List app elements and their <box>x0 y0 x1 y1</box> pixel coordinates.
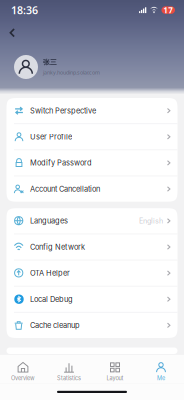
button[interactable]: Account Cancellation <box>6 176 177 202</box>
button[interactable]: Config Network <box>6 234 177 260</box>
staticText: OTA Helper <box>30 269 70 278</box>
staticText: Modify Password <box>30 158 92 167</box>
staticText: Local Debug <box>30 295 73 304</box>
staticText: Config Network <box>30 242 85 251</box>
button[interactable]: Cache cleanup <box>6 313 177 338</box>
staticText: 18:36 <box>11 3 38 17</box>
staticText: 张三 <box>43 58 57 66</box>
staticText: Overview <box>11 375 35 382</box>
button[interactable]: 张三 <box>0 55 184 79</box>
staticText: Layout <box>106 375 123 382</box>
staticText: User Profile <box>30 132 72 141</box>
staticText: Statistics <box>57 375 81 382</box>
button[interactable]: Me <box>138 353 184 385</box>
button[interactable]: Back <box>0 25 24 40</box>
staticText: Switch Perspective <box>30 106 96 115</box>
button[interactable]: User Profile <box>6 124 177 150</box>
staticText: English <box>139 216 163 225</box>
button[interactable]: Modify Password <box>6 150 177 176</box>
button[interactable]: Languages <box>6 208 177 234</box>
staticText: Cache cleanup <box>30 321 80 330</box>
button[interactable]: Statistics <box>46 353 92 385</box>
button[interactable]: OTA Helper <box>6 260 177 286</box>
staticText: Account Cancellation <box>30 184 100 193</box>
button[interactable]: Overview <box>0 353 46 385</box>
staticText: janky.houdinp.solar.com <box>43 69 100 76</box>
staticText: Languages <box>30 216 68 225</box>
button[interactable]: Switch Perspective <box>6 98 177 124</box>
staticText: 17 <box>163 5 173 15</box>
staticText: Me <box>157 375 165 382</box>
button[interactable]: Layout <box>92 353 138 385</box>
button[interactable]: Local Debug <box>6 286 177 313</box>
